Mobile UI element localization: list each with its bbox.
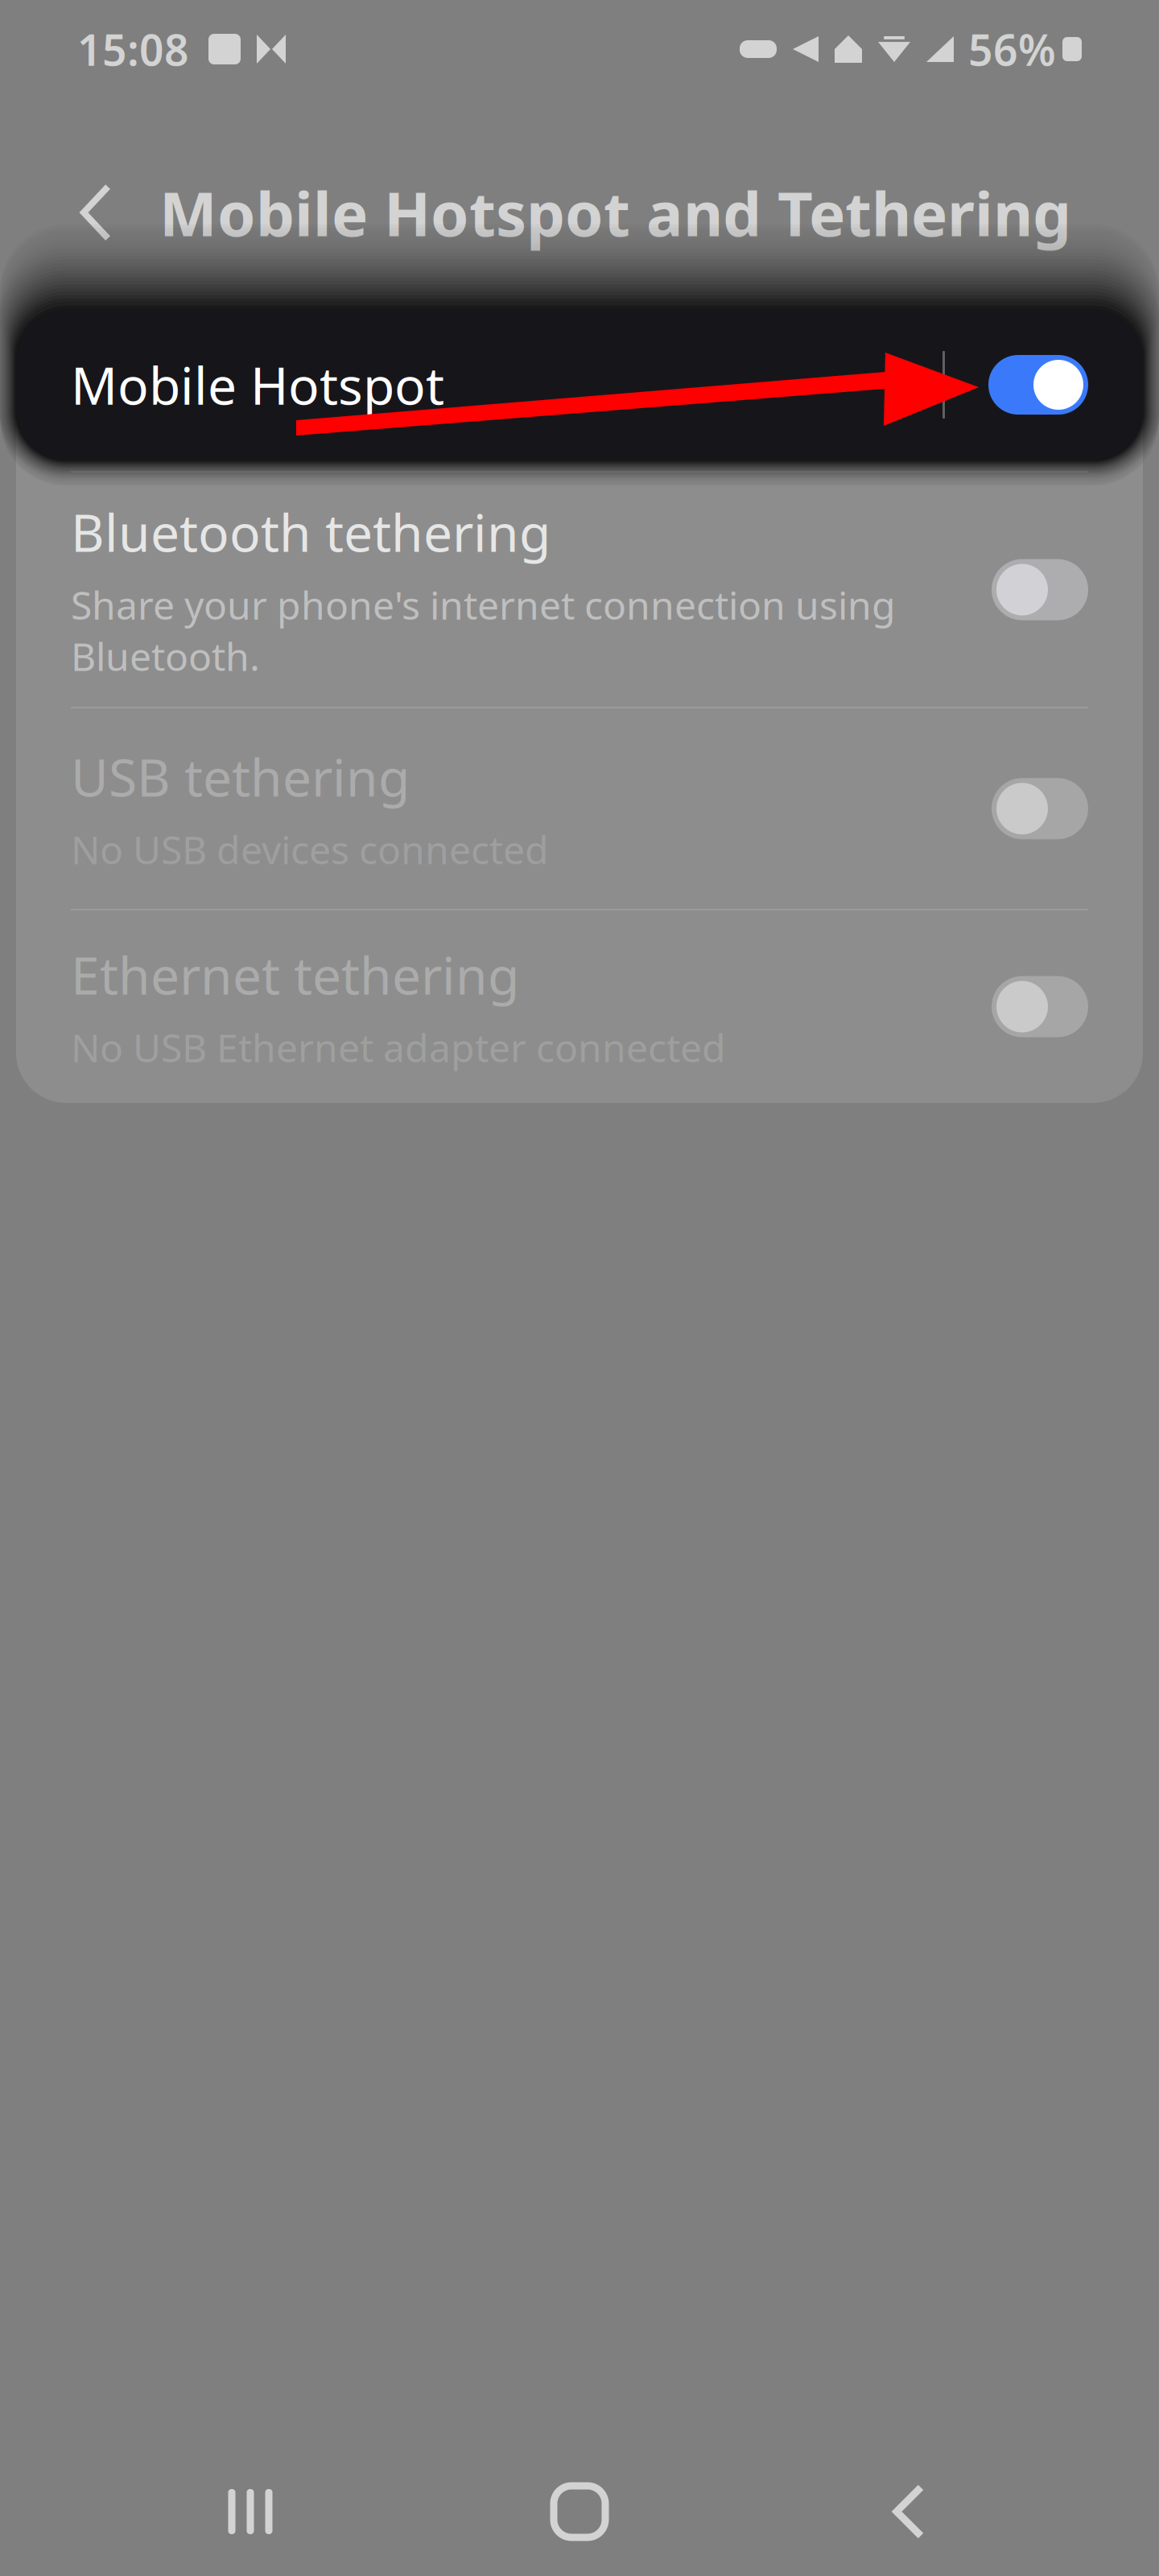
button[interactable]: Home bbox=[497, 2436, 662, 2576]
button[interactable]: Bluetooth tethering bbox=[16, 473, 1143, 707]
button[interactable]: Back bbox=[826, 2436, 992, 2576]
button[interactable]: Mobile Hotspot bbox=[16, 303, 1143, 471]
button[interactable]: Back bbox=[47, 164, 145, 261]
staticText: Mobile Hotspot and Tethering bbox=[159, 172, 1071, 253]
staticText: No USB Ethernet adapter connected bbox=[71, 1022, 726, 1073]
staticText: 15:08 bbox=[77, 21, 189, 78]
staticText: USB tethering bbox=[71, 742, 410, 811]
staticText: Mobile Hotspot bbox=[71, 351, 444, 419]
staticText: Share your phone's internet connection u… bbox=[71, 579, 896, 682]
button[interactable]: Ethernet tethering bbox=[16, 910, 1143, 1103]
button[interactable]: Mobile Hotspot bbox=[0, 309, 1159, 460]
staticText: No USB devices connected bbox=[71, 824, 549, 875]
staticText: Mobile Hotspot bbox=[71, 353, 444, 421]
button[interactable]: Recent apps bbox=[167, 2436, 333, 2576]
staticText: Bluetooth tethering bbox=[71, 498, 551, 566]
staticText: 56% bbox=[968, 21, 1056, 78]
button[interactable]: USB tethering bbox=[16, 708, 1143, 909]
staticText: Ethernet tethering bbox=[71, 940, 519, 1009]
